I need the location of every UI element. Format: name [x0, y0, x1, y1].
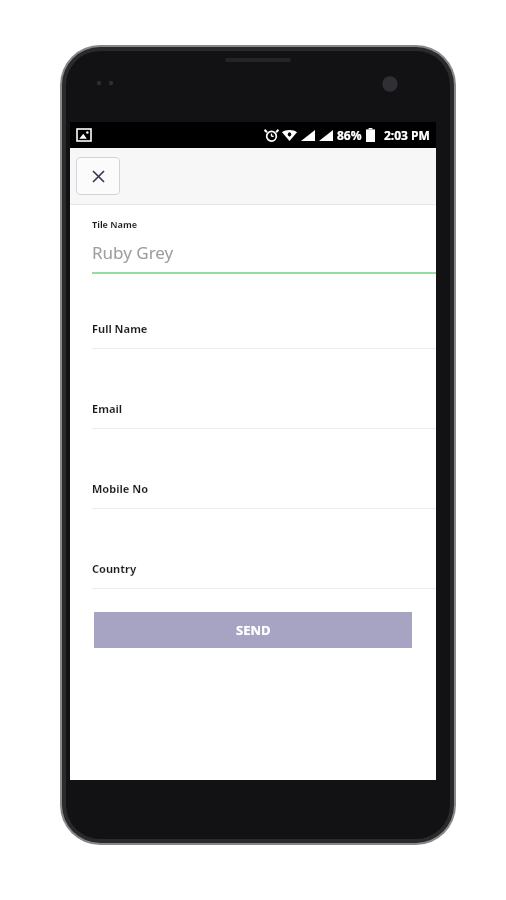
staticText: 2:03 PM — [384, 127, 430, 143]
button[interactable]: Tile Name — [70, 205, 436, 272]
staticText: Email — [92, 401, 123, 416]
staticText: SEND — [236, 621, 271, 639]
button[interactable]: Close — [76, 157, 120, 195]
staticText: Ruby Grey — [92, 241, 174, 264]
staticText: Tile Name — [92, 218, 138, 230]
staticText: Full Name — [92, 321, 148, 336]
button[interactable]: Mobile No — [70, 429, 436, 509]
button[interactable]: Full Name — [70, 274, 436, 349]
button[interactable]: SEND — [94, 612, 412, 648]
button[interactable]: Country — [70, 509, 436, 589]
staticText: Mobile No — [92, 481, 149, 496]
button[interactable]: Email — [70, 349, 436, 429]
staticText: Country — [92, 561, 137, 576]
staticText: 86% — [337, 127, 362, 143]
